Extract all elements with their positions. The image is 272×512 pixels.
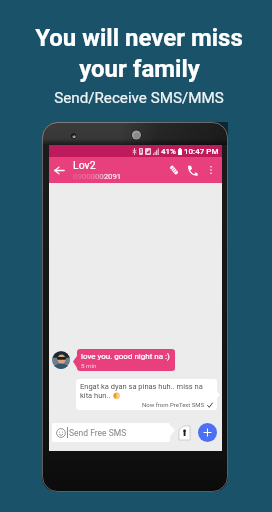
staticText: 09000002091 <box>73 172 122 181</box>
button[interactable]: Send Free SMS <box>52 423 170 442</box>
button[interactable]: Attach <box>164 157 183 183</box>
staticText: your family <box>79 55 200 83</box>
staticText: Send Free SMS <box>69 428 127 438</box>
staticText: 5 min <box>81 362 97 369</box>
button[interactable]: Send message <box>198 423 217 442</box>
staticText: 41% <box>161 147 176 156</box>
staticText: 10:47 PM <box>184 147 219 156</box>
staticText: You will never miss <box>35 24 243 52</box>
staticText: Send/Receive SMS/MMS <box>54 89 224 107</box>
button[interactable]: More options <box>202 157 220 183</box>
staticText: kita hun.. <box>80 391 111 400</box>
button[interactable]: Select SIM card <box>179 426 190 440</box>
staticText: Engat ka dyan sa pinas huh.. miss na <box>80 382 203 391</box>
button[interactable]: Back <box>49 157 69 183</box>
staticText: Now from PreText SMS <box>142 401 205 408</box>
staticText: Lov2 <box>73 159 96 171</box>
button[interactable]: Call <box>183 157 202 183</box>
staticText: love you. good night na :) <box>81 352 170 361</box>
